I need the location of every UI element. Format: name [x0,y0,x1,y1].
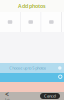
staticText: Add photos [18,2,46,10]
button[interactable]: Photo [0,12,20,32]
button[interactable]: < [0,90,14,100]
button[interactable]: Select photo [57,73,64,80]
staticText: Cancel [44,93,56,99]
staticText: Back [4,99,9,100]
button[interactable]: Dismiss [56,64,64,72]
staticText: < [5,90,9,99]
button[interactable]: Photo [21,12,41,32]
button[interactable]: Photo [41,12,61,32]
staticText: Choose up to 5 photos [9,65,46,71]
button[interactable]: Cancel [40,93,60,99]
